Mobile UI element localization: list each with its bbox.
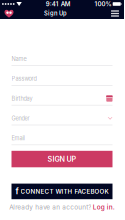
staticText: Gender <box>11 115 29 122</box>
staticText: f <box>15 187 18 196</box>
staticText: Already have an account? <box>9 203 91 211</box>
staticText: Email <box>11 135 24 142</box>
button[interactable]: f <box>11 184 112 199</box>
staticText: 9:41 AM <box>46 0 71 8</box>
staticText: Name <box>11 56 26 62</box>
staticText: Log in. <box>93 203 115 211</box>
staticText: SIGN UP <box>47 155 76 163</box>
staticText: 100% <box>94 0 111 8</box>
staticText: Birthday <box>11 95 32 102</box>
button[interactable]: Home <box>3 8 15 19</box>
button[interactable]: SIGN UP <box>11 151 112 167</box>
staticText: Sign Up <box>44 10 67 17</box>
button[interactable]: Log in. <box>93 203 115 211</box>
staticText: CONNECT WITH FACEBOOK <box>20 188 108 195</box>
button[interactable]: Menu <box>109 8 121 19</box>
staticText: Password <box>11 75 36 82</box>
